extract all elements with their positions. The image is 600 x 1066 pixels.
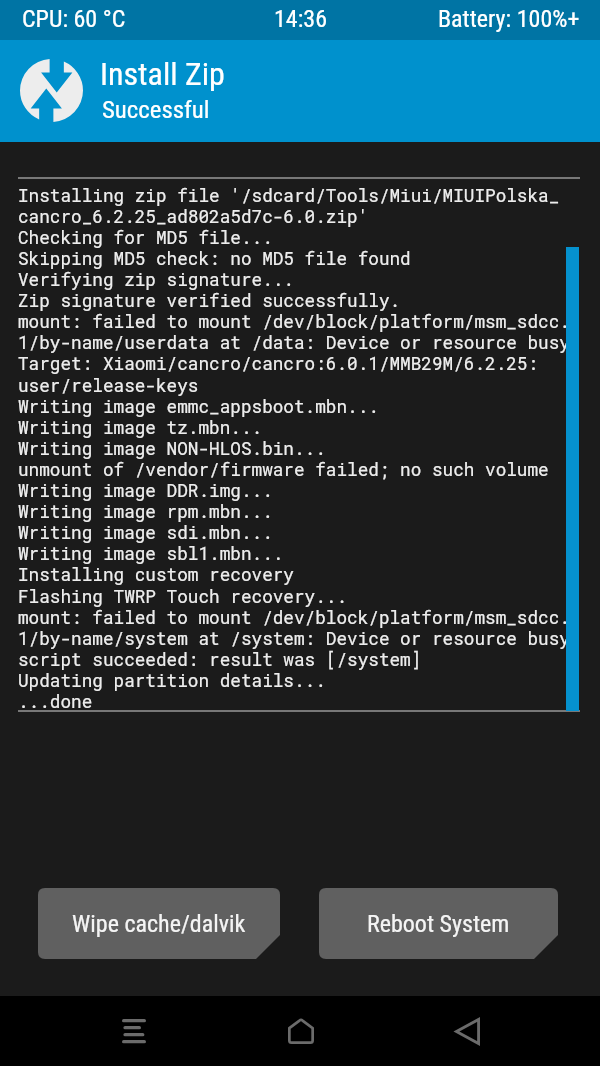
staticText: Verifying zip signature... [18, 267, 294, 290]
button[interactable]: Home [234, 996, 368, 1066]
button[interactable]: Back [400, 996, 534, 1066]
staticText: Updating partition details... [18, 668, 326, 691]
staticText: Battery: 100%+ [438, 5, 580, 33]
button[interactable]: Wipe cache/dalvik [38, 888, 280, 959]
staticText: ...done [18, 689, 93, 712]
staticText: Wipe cache/dalvik [72, 910, 246, 938]
staticText: Target: Xiaomi/cancro/cancro:6.0.1/MMB29… [18, 351, 539, 374]
staticText: Zip signature verified successfully. [18, 288, 401, 311]
staticText: cancro_6.2.25_ad802a5d7c-6.0.zip' [18, 204, 369, 227]
staticText: unmount of /vendor/firmware failed; no s… [18, 457, 549, 480]
staticText: 1/by-name/userdata at /data: Device or r… [18, 330, 570, 353]
staticText: Install Zip [100, 55, 225, 93]
staticText: 14:36 [274, 5, 327, 33]
button[interactable]: Recent apps [67, 996, 201, 1066]
staticText: mount: failed to mount /dev/block/platfo… [18, 309, 570, 332]
staticText: Successful [102, 95, 210, 124]
staticText: Installing zip file '/sdcard/Tools/Miui/… [18, 183, 560, 206]
staticText: Writing image NON-HLOS.bin... [18, 436, 326, 459]
staticText: user/release-keys [18, 373, 199, 396]
staticText: Writing image emmc_appsboot.mbn... [18, 394, 379, 417]
staticText: Writing image tz.mbn... [18, 415, 263, 438]
staticText: Writing image sdi.mbn... [18, 520, 273, 543]
button[interactable]: Install Zip [0, 40, 600, 142]
staticText: script succeeded: result was [/system] [18, 647, 422, 670]
staticText: Writing image sbl1.mbn... [18, 541, 284, 564]
staticText: Writing image rpm.mbn... [18, 499, 273, 522]
staticText: Skipping MD5 check: no MD5 file found [18, 246, 411, 269]
button[interactable]: Reboot System [319, 888, 558, 959]
staticText: Reboot System [367, 910, 510, 938]
staticText: Flashing TWRP Touch recovery... [18, 584, 348, 607]
staticText: Checking for MD5 file... [18, 225, 273, 248]
staticText: mount: failed to mount /dev/block/platfo… [18, 605, 570, 628]
staticText: Writing image DDR.img... [18, 478, 273, 501]
staticText: CPU: 60 °C [22, 5, 126, 33]
staticText: 1/by-name/system at /system: Device or r… [18, 626, 570, 649]
staticText: Installing custom recovery [18, 562, 294, 585]
